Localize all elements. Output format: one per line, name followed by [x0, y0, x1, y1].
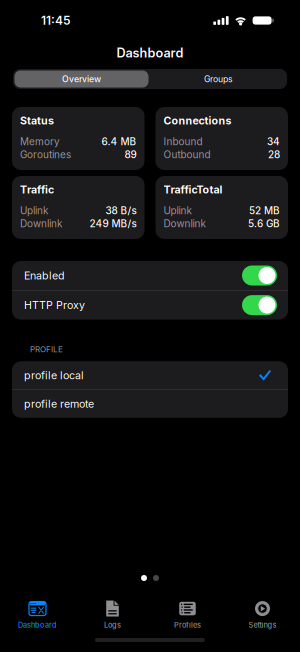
staticText: Downlink	[20, 217, 62, 230]
staticText: 6.4 MB	[101, 135, 136, 148]
staticText: profile local	[24, 369, 84, 382]
button[interactable]: HTTP Proxy	[12, 291, 288, 320]
button[interactable]: Profiles	[150, 590, 225, 633]
staticText: Goroutines	[20, 148, 71, 161]
button[interactable]: Dashboard	[0, 590, 75, 633]
staticText: Traffic	[20, 183, 54, 196]
staticText: 11:45	[41, 13, 71, 28]
staticText: 28	[268, 148, 280, 161]
staticText: Groups	[204, 74, 233, 84]
staticText: Connections	[163, 114, 231, 127]
staticText: Dashboard	[116, 45, 183, 61]
staticText: 34	[267, 135, 280, 148]
staticText: Profiles	[174, 621, 201, 629]
button[interactable]: Settings	[225, 590, 300, 633]
staticText: Dashboard	[18, 621, 57, 629]
staticText: Downlink	[163, 217, 205, 230]
staticText: Status	[20, 114, 54, 127]
staticText: 249 MB/s	[89, 217, 136, 230]
staticText: Overview	[62, 74, 101, 84]
staticText: Logs	[104, 621, 121, 629]
staticText: Uplink	[163, 204, 191, 217]
staticText: 52 MB	[249, 204, 280, 217]
staticText: HTTP Proxy	[24, 299, 85, 311]
staticText: 89	[124, 148, 136, 161]
staticText: Outbound	[163, 148, 210, 161]
staticText: Memory	[20, 135, 60, 148]
button[interactable]: Groups	[150, 69, 287, 89]
button[interactable]: profile remote	[12, 390, 288, 418]
button[interactable]: profile local	[12, 361, 288, 389]
staticText: 38 B/s	[105, 204, 136, 217]
button[interactable]: Logs	[75, 590, 150, 633]
staticText: Settings	[248, 621, 276, 629]
button[interactable]: Overview	[13, 69, 150, 89]
staticText: Enabled	[24, 269, 65, 282]
staticText: 5.6 GB	[248, 217, 280, 230]
staticText: PROFILE	[30, 345, 63, 354]
staticText: TrafficTotal	[163, 183, 222, 196]
button[interactable]: Enabled	[12, 261, 288, 290]
staticText: Inbound	[163, 135, 202, 148]
staticText: Uplink	[20, 204, 48, 217]
staticText: profile remote	[24, 397, 94, 410]
